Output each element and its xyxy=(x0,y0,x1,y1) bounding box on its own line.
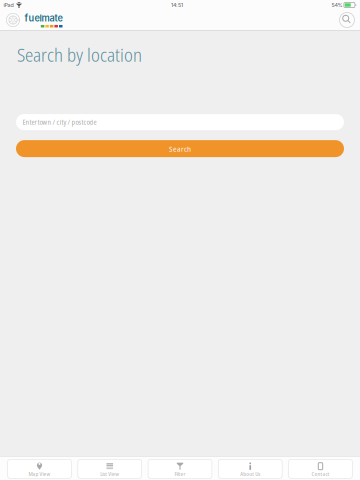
button[interactable]: List View xyxy=(78,459,142,478)
button[interactable]: Search xyxy=(335,10,359,30)
button[interactable]: Filter xyxy=(148,459,212,478)
staticText: Filter xyxy=(174,470,185,478)
staticText: fuelmate xyxy=(24,12,62,24)
staticText: Search xyxy=(169,143,191,154)
staticText: Enter town / city / postcode xyxy=(22,117,96,127)
staticText: Contact xyxy=(311,470,329,478)
button[interactable]: Search xyxy=(16,140,344,157)
staticText: 14:51 xyxy=(171,2,183,8)
staticText: List View xyxy=(100,470,119,478)
staticText: About Us xyxy=(240,470,260,478)
staticText: iPad xyxy=(3,2,13,8)
staticText: Search by location xyxy=(17,42,142,67)
button[interactable]: Contact xyxy=(289,459,352,478)
button[interactable]: About Us xyxy=(218,459,282,478)
button[interactable]: Enter town / city / postcode xyxy=(16,114,344,130)
button[interactable]: Map View xyxy=(8,459,71,478)
staticText: Map View xyxy=(28,470,50,478)
staticText: 54% xyxy=(331,2,342,8)
